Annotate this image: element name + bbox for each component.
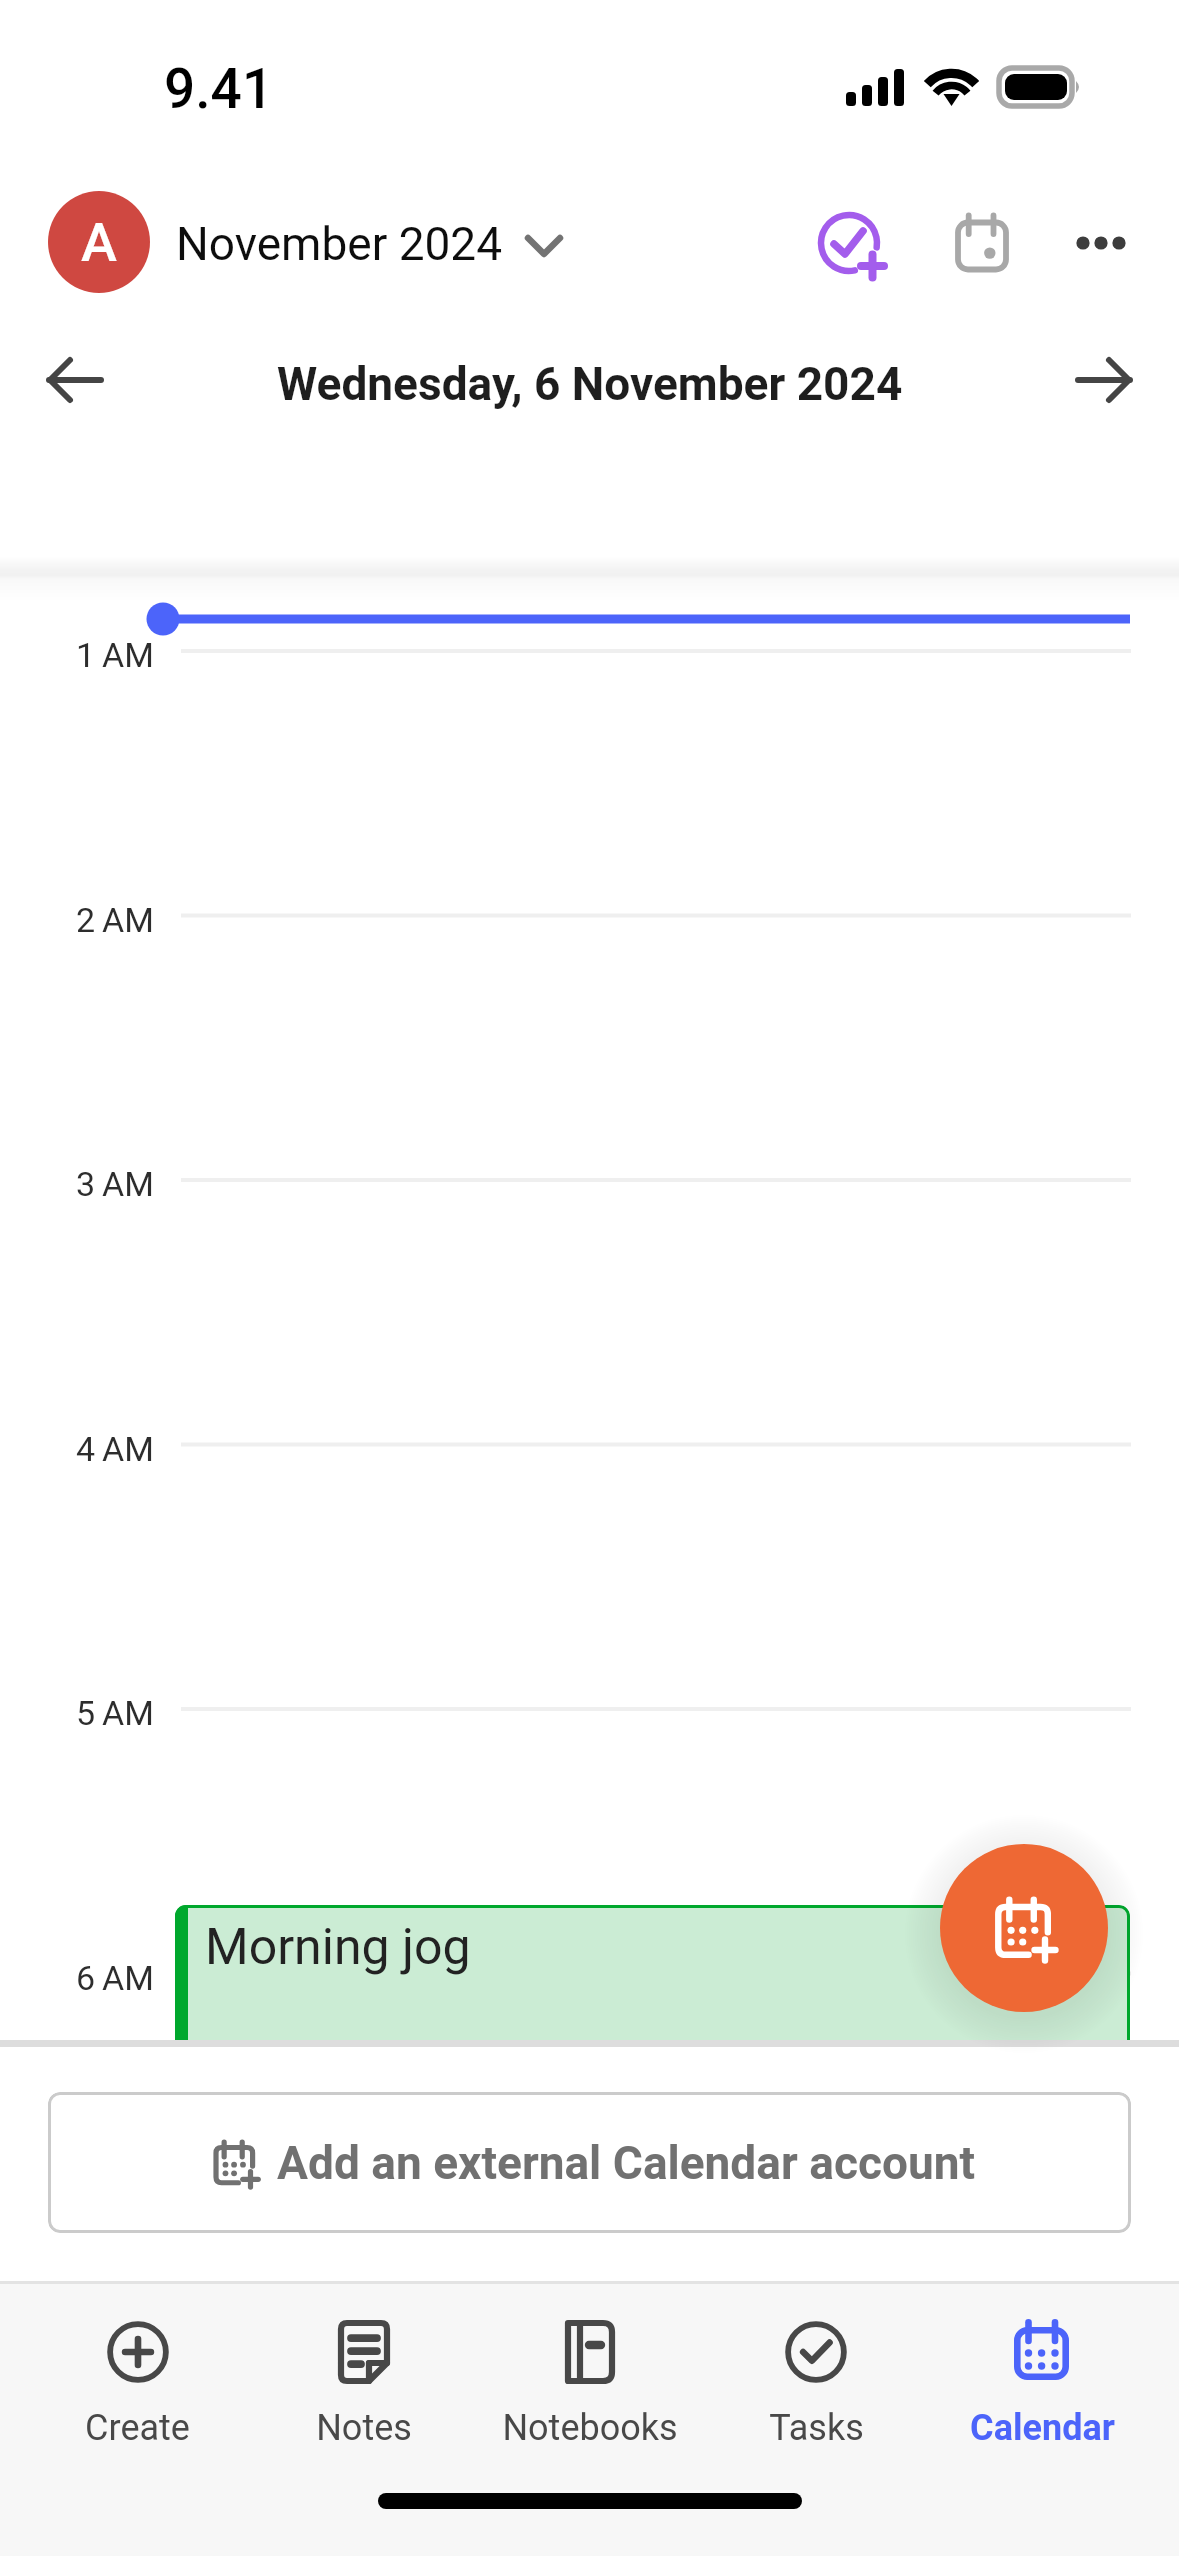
staticText: 4 [76,1429,96,1469]
button[interactable]: Notes [251,2284,477,2456]
button[interactable]: Next day [1056,332,1152,428]
staticText: A [81,211,117,274]
staticText: AM [102,1958,154,1998]
staticText: Morning jog [205,1918,471,1977]
button[interactable]: November 2024 [176,170,563,318]
staticText: 9.41 [164,57,274,121]
staticText: Notebooks [502,2407,678,2449]
staticText: AM [102,900,154,940]
button[interactable]: Morning jog [175,1905,1130,2040]
staticText: Add an external Calendar account [277,2136,975,2190]
staticText: Notes [316,2407,412,2449]
button[interactable]: Create event [940,1844,1108,2012]
staticText: 6 [76,1958,96,1998]
button[interactable]: Add an external Calendar account [48,2092,1131,2233]
staticText: AM [102,1164,154,1204]
staticText: AM [102,1693,154,1733]
button[interactable]: Tasks [703,2284,929,2456]
button[interactable]: Add task [804,192,908,296]
button[interactable]: Account [48,191,150,293]
staticText: Tasks [769,2407,864,2449]
staticText: AM [102,1429,154,1469]
staticText: 3 [76,1164,96,1204]
staticText: November 2024 [176,217,503,271]
button[interactable]: Create [24,2284,251,2456]
staticText: Calendar [970,2407,1115,2449]
button[interactable]: Calendar [929,2284,1155,2456]
button[interactable]: Previous day [27,332,123,428]
button[interactable]: More options [1053,196,1149,292]
button[interactable]: Open calendar [933,196,1029,292]
staticText: 2 [76,900,96,940]
button[interactable]: Notebooks [477,2284,703,2456]
staticText: Create [85,2407,190,2449]
staticText: AM [102,635,154,675]
staticText: Wednesday, 6 November 2024 [277,357,903,411]
staticText: 1 [76,635,96,675]
staticText: 5 [76,1693,96,1733]
